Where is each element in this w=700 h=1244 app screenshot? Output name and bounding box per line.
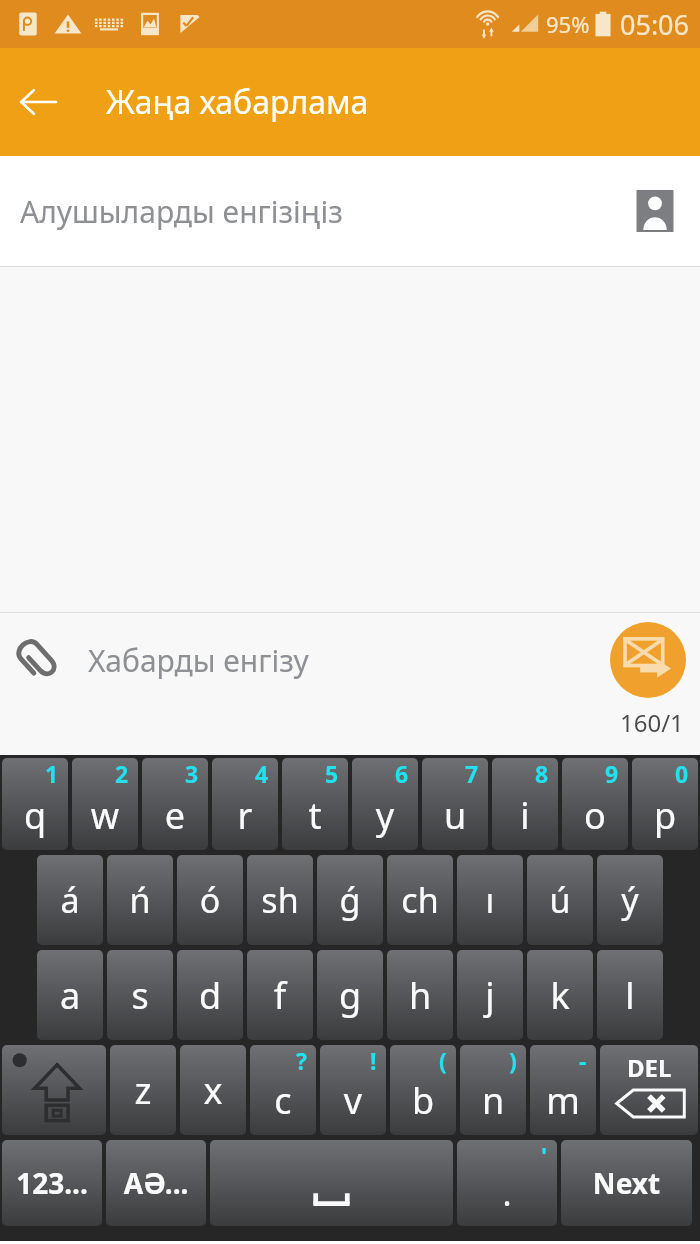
button[interactable]: ń [107, 855, 173, 945]
button[interactable]: Shift [2, 1045, 106, 1135]
staticText: r [212, 791, 278, 840]
staticText: ý [597, 877, 663, 923]
staticText: á [37, 877, 103, 923]
staticText: . [457, 1170, 557, 1216]
staticText: m [530, 1076, 596, 1125]
staticText: y [352, 791, 418, 840]
button[interactable]: h [387, 950, 453, 1040]
staticText: h [387, 971, 453, 1020]
button[interactable]: 4 [212, 758, 278, 850]
staticText: ó [177, 877, 243, 923]
staticText: 4 [255, 758, 269, 789]
staticText: f [247, 971, 313, 1020]
button[interactable]: Back [0, 64, 76, 140]
button[interactable]: ( [390, 1045, 456, 1135]
staticText: sh [247, 877, 313, 923]
staticText: q [2, 791, 68, 840]
staticText: n [460, 1076, 526, 1125]
staticText: u [422, 791, 488, 840]
button[interactable]: k [527, 950, 593, 1040]
button[interactable]: ch [387, 855, 453, 945]
button[interactable]: Send message [610, 622, 686, 698]
staticText: 05:06 [620, 6, 690, 43]
staticText: 2 [115, 758, 129, 789]
button[interactable]: á [37, 855, 103, 945]
button[interactable]: 6 [352, 758, 418, 850]
staticText: z [110, 1066, 176, 1115]
button[interactable]: ı [457, 855, 523, 945]
staticText: 8 [535, 758, 549, 789]
staticText: t [282, 791, 348, 840]
staticText: e [142, 791, 208, 840]
staticText: 123... [2, 1164, 102, 1202]
staticText: d [177, 971, 243, 1020]
button[interactable]: ó [177, 855, 243, 945]
staticText: 0 [675, 758, 689, 789]
staticText: k [527, 971, 593, 1020]
button[interactable]: 0 [632, 758, 698, 850]
staticText: 7 [465, 758, 479, 789]
staticText: Жаңа хабарлама [106, 80, 369, 124]
staticText: ( [439, 1045, 447, 1076]
staticText: w [72, 791, 138, 840]
staticText: s [107, 971, 173, 1020]
button[interactable]: f [247, 950, 313, 1040]
staticText: a [37, 971, 103, 1020]
button[interactable]: x [180, 1045, 246, 1135]
button[interactable]: - [530, 1045, 596, 1135]
button[interactable]: j [457, 950, 523, 1040]
staticText: x [180, 1066, 246, 1115]
staticText: l [597, 971, 663, 1020]
button[interactable]: ý [597, 855, 663, 945]
button[interactable]: 1 [2, 758, 68, 850]
button[interactable]: 9 [562, 758, 628, 850]
button[interactable]: ? [250, 1045, 316, 1135]
button[interactable]: d [177, 950, 243, 1040]
button[interactable]: 8 [492, 758, 558, 850]
button[interactable]: 2 [72, 758, 138, 850]
button[interactable]: Алушыларды енгізіңіз [0, 156, 700, 266]
button[interactable]: Attach [8, 627, 72, 691]
button[interactable]: Delete [600, 1045, 698, 1135]
staticText: ' [541, 1140, 548, 1171]
button[interactable]: l [597, 950, 663, 1040]
staticText: b [390, 1076, 456, 1125]
button[interactable]: ú [527, 855, 593, 945]
button[interactable]: 5 [282, 758, 348, 850]
staticText: DEL [627, 1051, 672, 1084]
staticText: ú [527, 877, 593, 923]
staticText: 3 [185, 758, 199, 789]
staticText: AӘ... [106, 1164, 206, 1202]
staticText: p [632, 791, 698, 840]
staticText: Алушыларды енгізіңіз [20, 191, 343, 232]
staticText: ı [457, 877, 523, 923]
button[interactable]: z [110, 1045, 176, 1135]
button[interactable]: 7 [422, 758, 488, 850]
staticText: ch [387, 877, 453, 923]
button[interactable]: ) [460, 1045, 526, 1135]
button[interactable]: Space [210, 1140, 453, 1226]
staticText: ) [509, 1045, 517, 1076]
staticText: ń [107, 877, 173, 923]
button[interactable]: ! [320, 1045, 386, 1135]
staticText: 9 [605, 758, 619, 789]
button[interactable]: ǵ [317, 855, 383, 945]
button[interactable]: sh [247, 855, 313, 945]
button[interactable]: a [37, 950, 103, 1040]
staticText: j [457, 971, 523, 1020]
button[interactable]: AӘ... [106, 1140, 206, 1226]
button[interactable]: 3 [142, 758, 208, 850]
button[interactable]: ' [457, 1140, 557, 1226]
staticText: 1 [45, 758, 59, 789]
button[interactable]: Хабарды енгізу [88, 640, 309, 681]
staticText: - [579, 1045, 587, 1076]
button[interactable]: Pick contacts [632, 188, 678, 234]
button[interactable]: 123... [2, 1140, 102, 1226]
button[interactable]: g [317, 950, 383, 1040]
staticText: Next [561, 1164, 692, 1202]
staticText: ! [370, 1045, 377, 1076]
staticText: 5 [325, 758, 339, 789]
staticText: g [317, 971, 383, 1020]
button[interactable]: s [107, 950, 173, 1040]
button[interactable]: Next [561, 1140, 692, 1226]
